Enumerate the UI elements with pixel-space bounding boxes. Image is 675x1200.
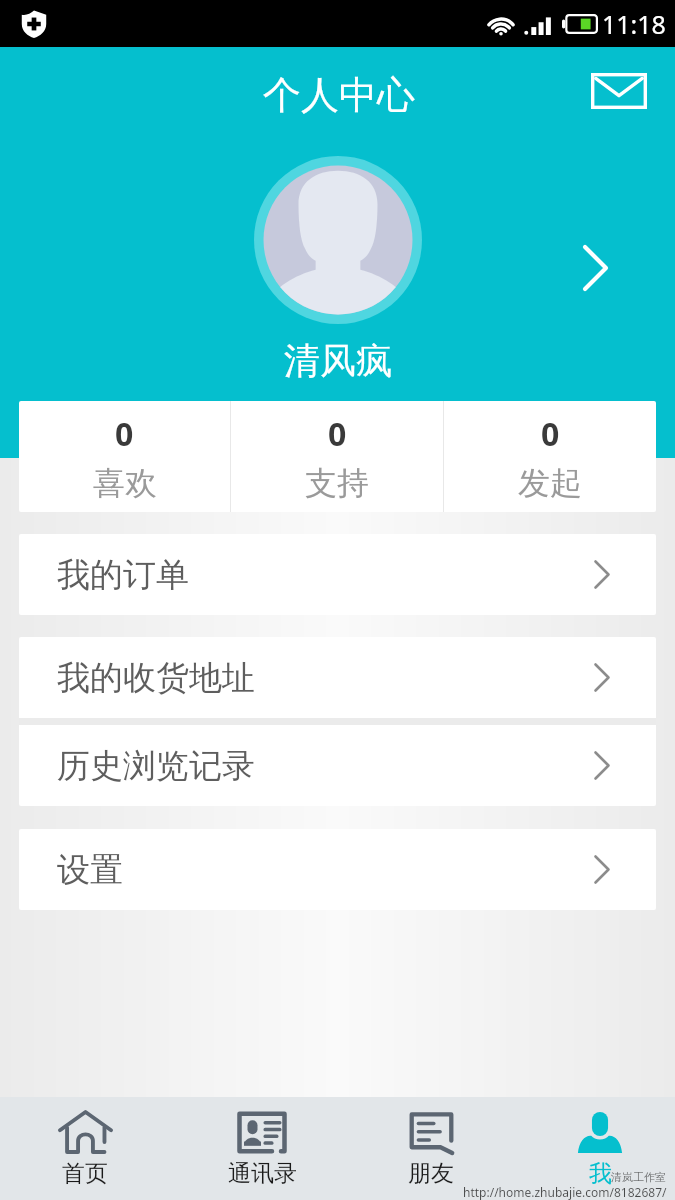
button[interactable]: Messages	[589, 61, 649, 121]
button[interactable]: 我的收货地址	[19, 637, 656, 718]
button[interactable]: 我的订单	[19, 534, 656, 615]
button[interactable]: 设置	[19, 829, 656, 910]
staticText: 支持	[305, 463, 369, 503]
staticText: 首页	[62, 1159, 108, 1188]
staticText: 我	[589, 1159, 612, 1188]
button[interactable]: 0	[19, 401, 230, 512]
button[interactable]: 历史浏览记录	[19, 725, 656, 806]
button[interactable]: 0	[444, 401, 656, 512]
staticText: http://home.zhubajie.com/8182687/	[463, 1184, 667, 1200]
staticText: 发起	[518, 463, 582, 503]
staticText: 我的收货地址	[57, 657, 255, 699]
button[interactable]: 朋友	[347, 1097, 515, 1200]
button[interactable]: 0	[231, 401, 443, 512]
button[interactable]: Profile details	[570, 243, 620, 293]
staticText: 我的订单	[57, 554, 189, 596]
button[interactable]: 我	[516, 1097, 675, 1200]
staticText: 朋友	[408, 1159, 454, 1188]
staticText: 0	[328, 412, 347, 456]
staticText: 喜欢	[93, 463, 157, 503]
staticText: 个人中心	[263, 71, 415, 119]
button[interactable]: 首页	[1, 1097, 169, 1200]
staticText: 设置	[57, 849, 123, 891]
staticText: 11:18	[602, 7, 666, 41]
staticText: 清风疯	[284, 338, 392, 383]
button[interactable]: 通讯录	[178, 1097, 346, 1200]
staticText: 0	[541, 412, 560, 456]
staticText: 清岚工作室	[611, 1170, 666, 1184]
staticText: 通讯录	[228, 1159, 297, 1188]
staticText: 历史浏览记录	[57, 745, 255, 787]
staticText: 0	[115, 412, 134, 456]
